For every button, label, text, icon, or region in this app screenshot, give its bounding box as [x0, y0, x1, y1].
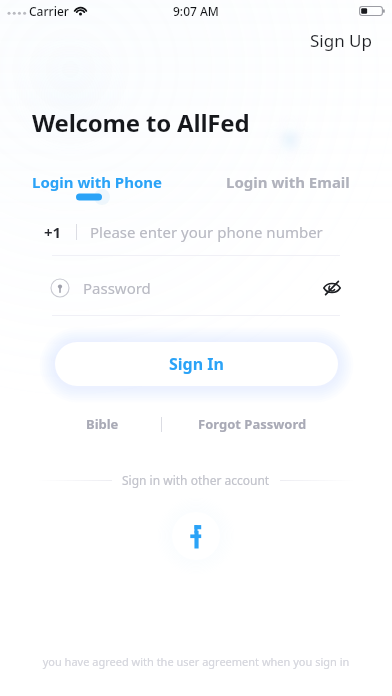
staticText: Login with Email	[226, 172, 350, 192]
staticText: Sign In	[169, 353, 224, 375]
button[interactable]: Login with Email	[218, 168, 358, 196]
staticText: Forgot Password	[198, 415, 307, 433]
staticText: you have agreed with the user agreement …	[0, 654, 392, 669]
staticText: Sign Up	[310, 29, 372, 52]
staticText: +1	[44, 222, 62, 242]
button[interactable]: Bible	[76, 410, 129, 438]
staticText: 9:07 AM	[173, 3, 219, 19]
staticText: Password	[83, 278, 151, 298]
staticText: Login with Phone	[32, 172, 163, 192]
button[interactable]: Show password	[316, 272, 348, 304]
staticText: Welcome to AllFed	[32, 106, 250, 139]
button[interactable]: +1	[44, 212, 344, 252]
staticText: Bible	[86, 415, 119, 433]
button[interactable]: Login with Phone	[24, 168, 171, 196]
button[interactable]: Password	[50, 270, 342, 306]
button[interactable]: Sign in with Facebook	[172, 512, 220, 560]
staticText: Carrier	[29, 3, 69, 19]
button[interactable]: Sign Up	[304, 26, 378, 55]
staticText: Please enter your phone number	[90, 222, 323, 242]
button[interactable]: Forgot Password	[188, 410, 317, 438]
staticText: Sign in with other account	[122, 472, 270, 488]
button[interactable]: Sign In	[55, 342, 338, 386]
